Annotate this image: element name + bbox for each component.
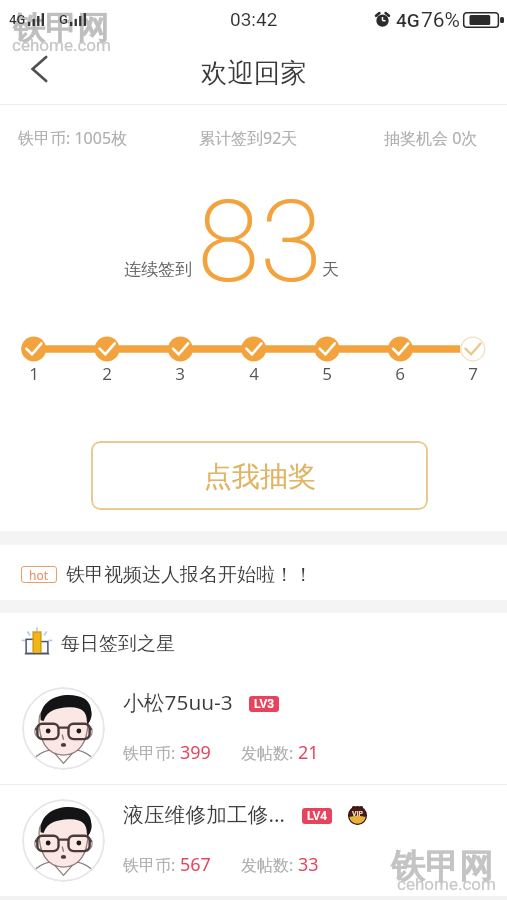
staticText: 2 [87,362,127,385]
staticText: 6 [380,362,420,385]
staticText: 铁甲网 [391,845,493,888]
staticText: 399 [180,740,211,765]
staticText: LV3 [254,697,274,711]
button[interactable]: Back [15,45,63,93]
staticText: 发帖数: [241,742,298,764]
staticText: 抽奖机会 0次 [384,127,478,149]
staticText: 欢迎回家 [201,56,307,89]
staticText: 天 [322,259,339,280]
staticText: 21 [298,740,319,765]
staticText: hot [29,567,49,583]
staticText: 1 [14,362,54,385]
staticText: 76% [421,8,460,33]
staticText: 累计签到92天 [199,127,298,149]
staticText: 连续签到 [124,259,192,280]
staticText: 液压维修加工修… [123,800,286,828]
staticText: 83 [197,175,323,309]
staticText: cehome.com [397,874,496,894]
staticText: 5 [307,362,347,385]
staticText: 567 [180,852,211,877]
staticText: 4G [396,9,420,31]
staticText: 铁甲网 [13,8,109,48]
button[interactable]: 点我抽奖 [91,441,428,510]
staticText: LV4 [307,809,327,823]
staticText: 3 [160,362,200,385]
button[interactable]: 小松75uu-3 [0,687,507,784]
staticText: 4G [9,12,26,27]
staticText: VIP [352,810,364,818]
staticText: cehome.com [12,35,111,55]
staticText: 小松75uu-3 [123,688,233,716]
staticText: 4 [234,362,274,385]
staticText: 铁甲币: 1005枚 [18,127,128,149]
staticText: 铁甲币: [123,742,180,764]
staticText: 点我抽奖 [204,459,316,494]
button[interactable]: hot [0,547,507,602]
staticText: 03:42 [230,8,278,30]
staticText: 7 [453,362,493,385]
staticText: 每日签到之星 [61,632,175,656]
staticText: 33 [298,852,319,877]
button[interactable]: 液压维修加工修… [0,799,507,896]
staticText: 铁甲视频达人报名开始啦！！ [66,563,313,587]
staticText: 发帖数: [241,854,298,876]
staticText: 铁甲币: [123,854,180,876]
staticText: G [59,12,68,27]
